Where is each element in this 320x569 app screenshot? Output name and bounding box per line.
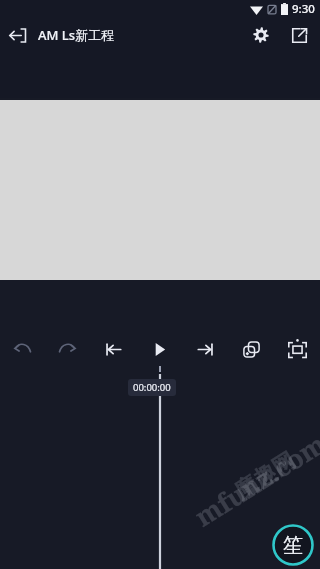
- button[interactable]: Skip to start: [90, 328, 136, 370]
- staticText: 魔趣网: [230, 447, 300, 505]
- button[interactable]: Loop: [228, 328, 274, 370]
- button[interactable]: Account badge: [271, 523, 315, 567]
- staticText: 笙: [283, 533, 303, 558]
- button[interactable]: Play: [136, 328, 182, 370]
- button[interactable]: Back: [0, 18, 34, 52]
- staticText: mfunz.com: [188, 425, 320, 533]
- staticText: AM Ls新工程: [38, 26, 115, 44]
- button[interactable]: Redo: [45, 328, 90, 370]
- button[interactable]: Fit to frame: [274, 328, 320, 370]
- button[interactable]: Export: [282, 18, 316, 52]
- button[interactable]: Undo: [0, 328, 45, 370]
- staticText: 9:30: [292, 1, 315, 17]
- button[interactable]: Settings: [244, 18, 278, 52]
- staticText: 00:00:00: [133, 381, 171, 394]
- button[interactable]: Skip to end: [182, 328, 228, 370]
